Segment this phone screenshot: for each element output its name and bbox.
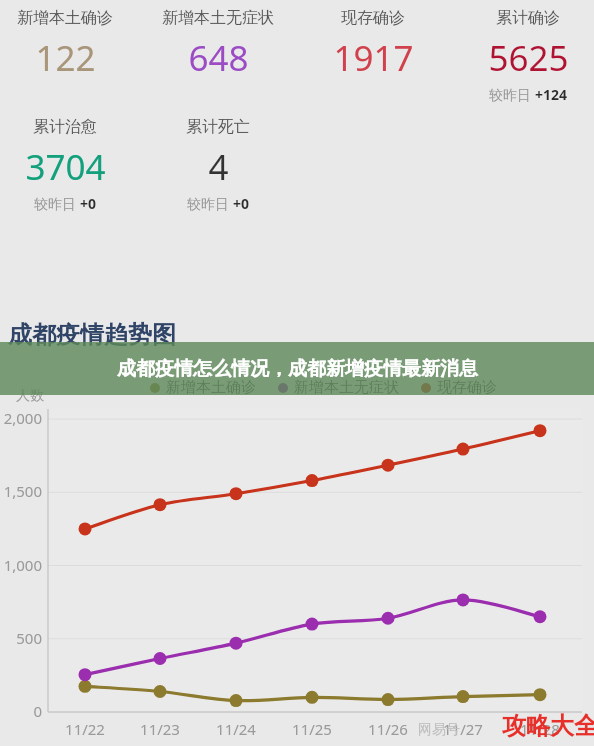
button[interactable]: 新增本土确诊 <box>150 378 256 397</box>
staticText: 0 <box>0 701 42 721</box>
button[interactable]: 累计确诊 <box>438 8 594 104</box>
staticText: 攻略大全 <box>502 711 594 741</box>
staticText: 11/28 <box>505 719 575 739</box>
staticText: +124 <box>535 85 568 104</box>
staticText: 11/23 <box>125 719 195 739</box>
staticText: 4 <box>208 143 229 191</box>
staticText: 5625 <box>488 34 569 82</box>
staticText: 累计确诊 <box>496 8 560 28</box>
staticText: 11/27 <box>428 719 498 739</box>
button[interactable]: 累计治愈 <box>0 117 155 213</box>
staticText: 3704 <box>25 143 106 191</box>
staticText: 现存确诊 <box>437 378 497 397</box>
staticText: 1,500 <box>0 481 42 501</box>
staticText: 500 <box>0 628 42 648</box>
staticText: 网易号 <box>418 721 460 739</box>
staticText: 新增本土无症状 <box>294 378 399 397</box>
staticText: 11/25 <box>277 719 347 739</box>
staticText: 648 <box>188 34 249 82</box>
staticText: 人数 <box>16 387 44 405</box>
button[interactable]: 现存确诊 <box>421 378 497 397</box>
staticText: 1917 <box>333 34 414 82</box>
staticText: 1,000 <box>0 555 42 575</box>
button[interactable]: 现存确诊 <box>283 8 463 82</box>
button[interactable]: 成都疫情趋势图 <box>8 320 176 350</box>
button[interactable]: 累计死亡 <box>128 117 308 213</box>
staticText: 新增本土确诊 <box>17 8 113 28</box>
staticText: 较昨日 <box>489 85 535 104</box>
staticText: 累计治愈 <box>33 117 97 137</box>
staticText: 11/22 <box>50 719 120 739</box>
button[interactable]: 新增本土确诊 <box>0 8 155 82</box>
staticText: 新增本土确诊 <box>166 378 256 397</box>
staticText: 122 <box>35 34 96 82</box>
staticText: 较昨日 <box>187 194 233 213</box>
staticText: 成都疫情怎么情况，成都新增疫情最新消息 <box>117 357 478 381</box>
button[interactable]: 新增本土无症状 <box>128 8 308 82</box>
staticText: 2,000 <box>0 408 42 428</box>
staticText: 较昨日 <box>34 194 80 213</box>
staticText: 累计死亡 <box>186 117 250 137</box>
button[interactable]: 新增本土无症状 <box>278 378 399 397</box>
staticText: 成都疫情趋势图 <box>8 320 176 350</box>
button[interactable]: 攻略大全 <box>502 711 594 741</box>
staticText: 11/26 <box>353 719 423 739</box>
staticText: +0 <box>233 194 250 213</box>
staticText: 新增本土无症状 <box>162 8 274 28</box>
staticText: +0 <box>80 194 97 213</box>
staticText: 现存确诊 <box>341 8 405 28</box>
staticText: 11/24 <box>201 719 271 739</box>
